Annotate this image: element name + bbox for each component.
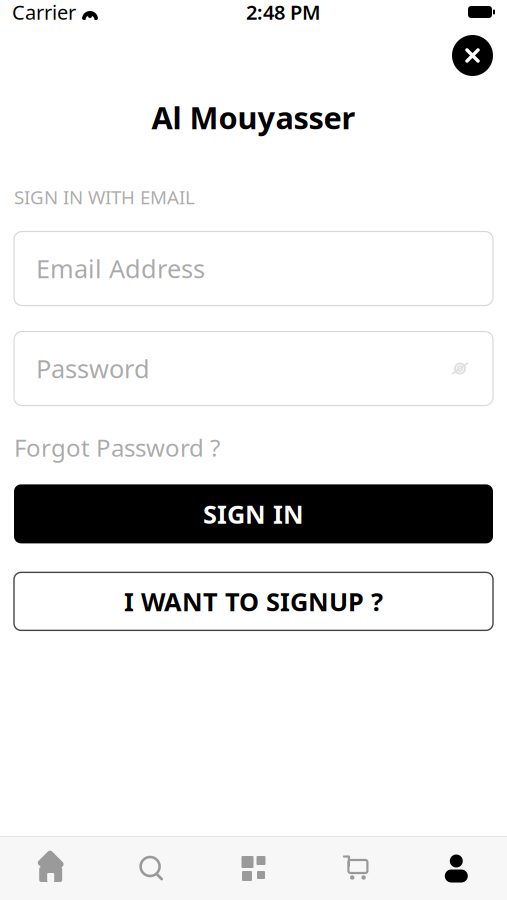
button[interactable]: Account (406, 837, 507, 900)
staticText: Email Address (36, 252, 205, 285)
staticText: 2:48 PM (246, 0, 321, 25)
button[interactable]: SIGN IN (14, 484, 493, 543)
button[interactable]: Forgot Password ? (14, 427, 493, 467)
button[interactable]: Categories (203, 837, 304, 900)
button[interactable]: Close (452, 35, 493, 76)
staticText: SIGN IN (203, 497, 304, 531)
button[interactable]: I WANT TO SIGNUP ? (14, 572, 493, 630)
staticText: Carrier (12, 0, 76, 25)
button[interactable]: Cart (304, 837, 406, 900)
staticText: Forgot Password ? (14, 431, 220, 463)
staticText: Al Mouyasser (151, 97, 355, 138)
button[interactable]: Search (101, 837, 203, 900)
button[interactable]: Home (0, 837, 101, 900)
staticText: I WANT TO SIGNUP ? (124, 585, 383, 618)
staticText: SIGN IN WITH EMAIL (14, 185, 195, 209)
staticText: Password (36, 352, 150, 385)
